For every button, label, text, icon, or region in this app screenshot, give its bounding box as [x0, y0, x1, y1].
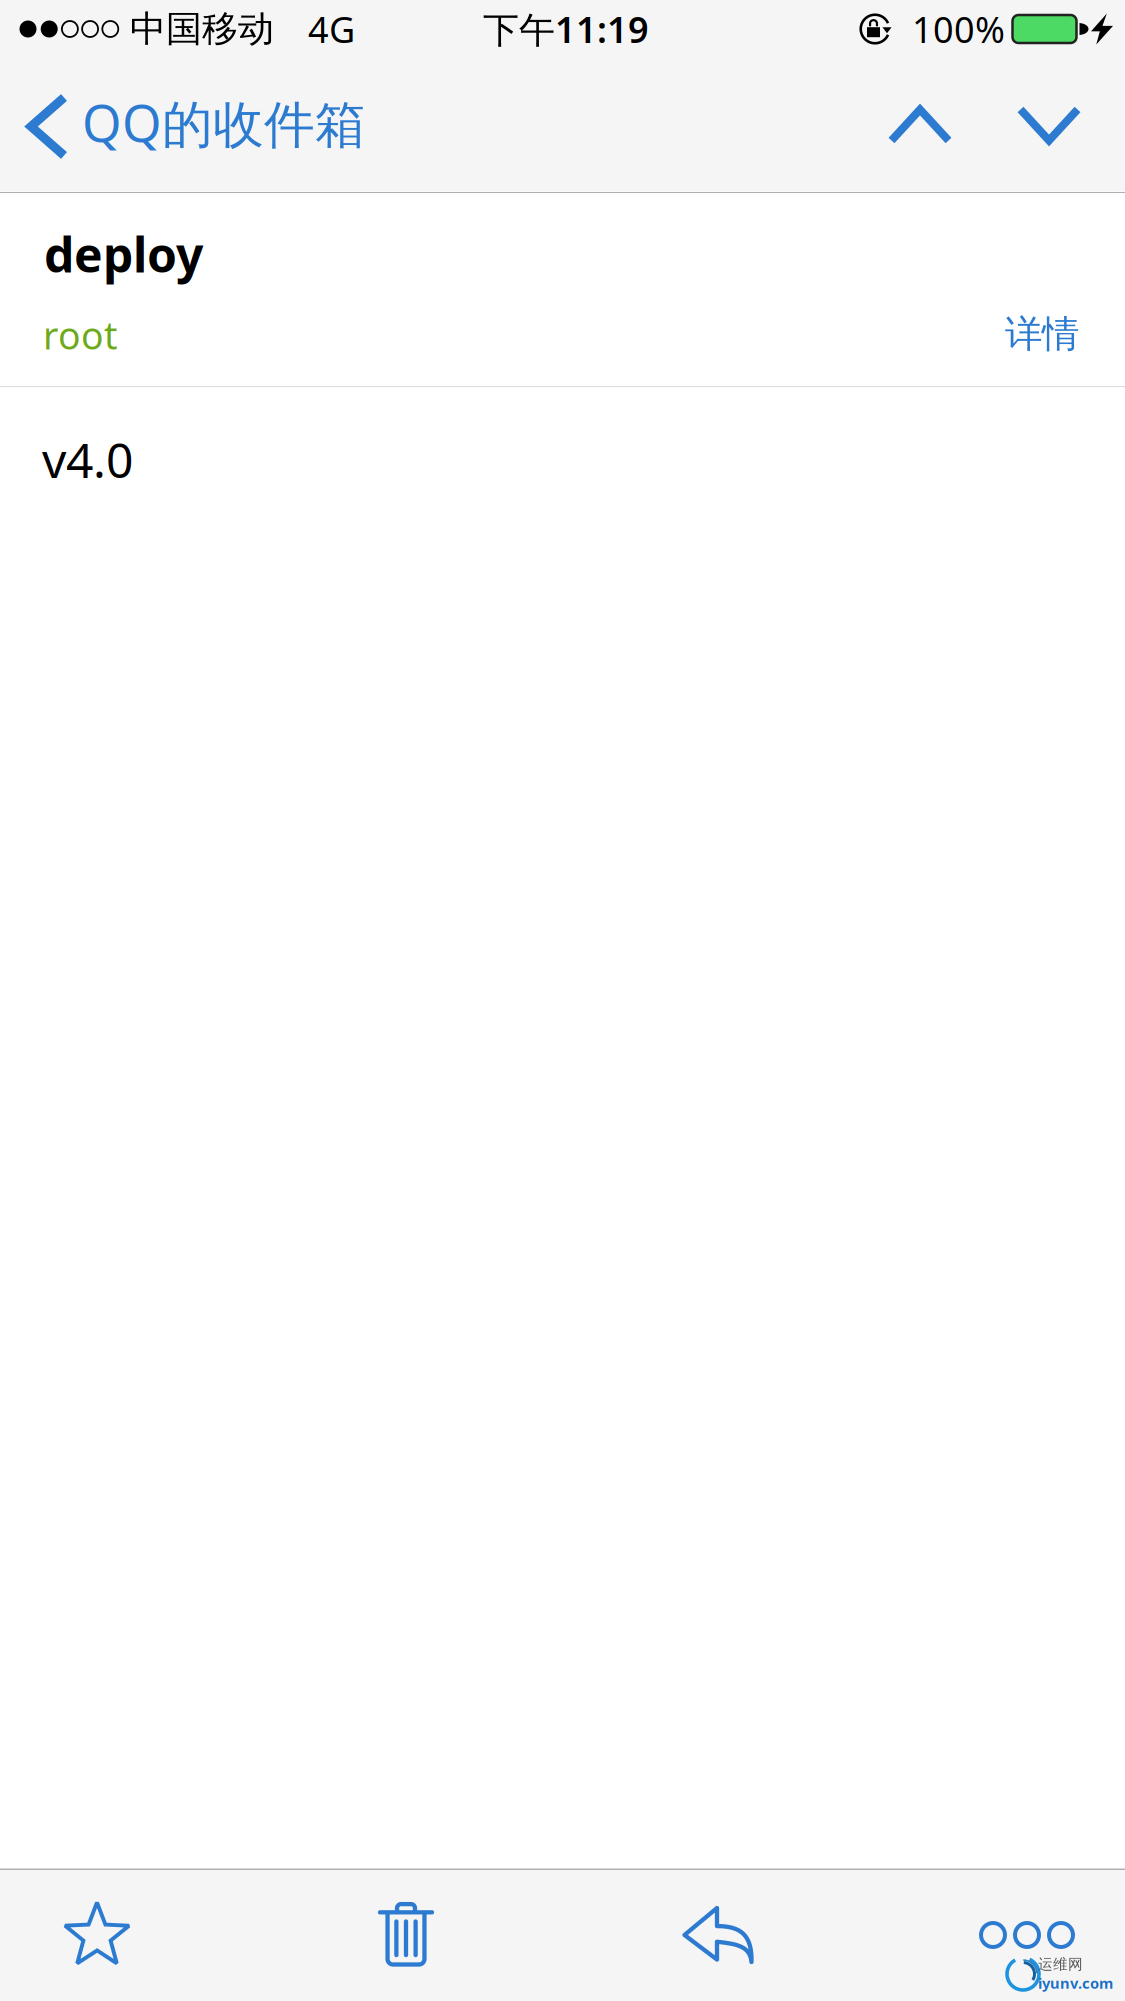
staticText: 4G	[308, 5, 355, 53]
staticText: root	[43, 310, 117, 360]
staticText: 详情	[1005, 311, 1079, 357]
staticText: 下午11:19	[483, 5, 649, 53]
staticText: 运维网	[1038, 1955, 1083, 1973]
button[interactable]: Reply	[643, 1869, 793, 2000]
button[interactable]: QQ的收件箱	[0, 60, 360, 191]
staticText: QQ的收件箱	[82, 89, 366, 156]
button[interactable]: 详情	[959, 304, 1079, 364]
button[interactable]: Flag	[22, 1868, 172, 1999]
staticText: deploy	[44, 222, 203, 286]
staticText: 100%	[912, 5, 1005, 53]
button[interactable]: Delete	[331, 1868, 481, 1999]
staticText: v4.0	[42, 428, 133, 491]
staticText: iyunv.com	[1038, 1973, 1113, 1993]
button[interactable]: Next message	[990, 59, 1108, 190]
button[interactable]: More	[952, 1869, 1102, 2000]
staticText: 中国移动	[130, 7, 274, 51]
button[interactable]: Previous message	[861, 59, 979, 190]
